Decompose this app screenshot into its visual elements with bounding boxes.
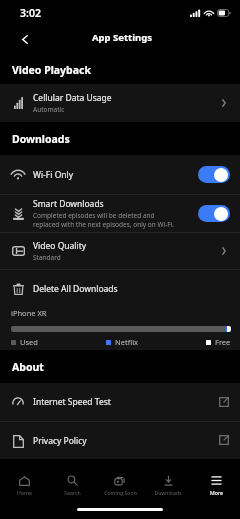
staticText: More <box>210 489 223 496</box>
button[interactable]: Internet Speed Test <box>0 383 240 421</box>
staticText: Completed episodes will be deleted and r… <box>33 211 175 229</box>
staticText: Home <box>17 489 32 496</box>
staticText: Video Quality <box>33 240 87 252</box>
button[interactable]: Back <box>12 26 38 52</box>
button[interactable]: Search <box>48 459 96 502</box>
staticText: Standard <box>33 253 61 262</box>
staticText: Free <box>215 337 231 347</box>
button[interactable]: Wi-Fi Only <box>0 155 240 194</box>
staticText: Privacy Policy <box>33 435 87 447</box>
staticText: Smart Downloads <box>33 198 104 210</box>
staticText: Delete All Downloads <box>33 283 118 295</box>
staticText: Video Playback <box>12 63 91 77</box>
button[interactable]: Coming Soon <box>96 459 144 502</box>
staticText: Downloads <box>154 489 182 496</box>
button[interactable]: Delete All Downloads <box>0 270 240 307</box>
button[interactable]: Open link <box>217 396 230 409</box>
staticText: Cellular Data Usage <box>33 92 112 104</box>
staticText: Downloads <box>12 132 70 146</box>
staticText: About <box>12 360 44 374</box>
staticText: Used <box>20 337 38 347</box>
staticText: iPhone XR <box>11 308 47 318</box>
button[interactable]: Cellular Data Usage <box>0 84 240 122</box>
button[interactable]: Privacy Policy <box>0 422 240 459</box>
staticText: Automatic <box>33 105 65 114</box>
staticText: Coming Soon <box>104 489 137 496</box>
staticText: App Settings <box>92 31 152 44</box>
button[interactable]: Smart Downloads <box>0 195 240 232</box>
staticText: Netflix <box>115 337 139 347</box>
staticText: Wi-Fi Only <box>33 169 74 181</box>
button[interactable]: Open link <box>217 434 230 447</box>
button[interactable]: Video Quality <box>0 233 240 269</box>
staticText: Internet Speed Test <box>33 396 111 408</box>
button[interactable]: Home <box>0 459 48 502</box>
button[interactable]: More <box>192 459 240 502</box>
staticText: 3:02 <box>20 6 41 20</box>
button[interactable]: Toggle <box>198 205 230 222</box>
button[interactable]: Toggle <box>198 166 230 183</box>
staticText: Search <box>64 489 81 496</box>
button[interactable]: Downloads <box>144 459 192 502</box>
